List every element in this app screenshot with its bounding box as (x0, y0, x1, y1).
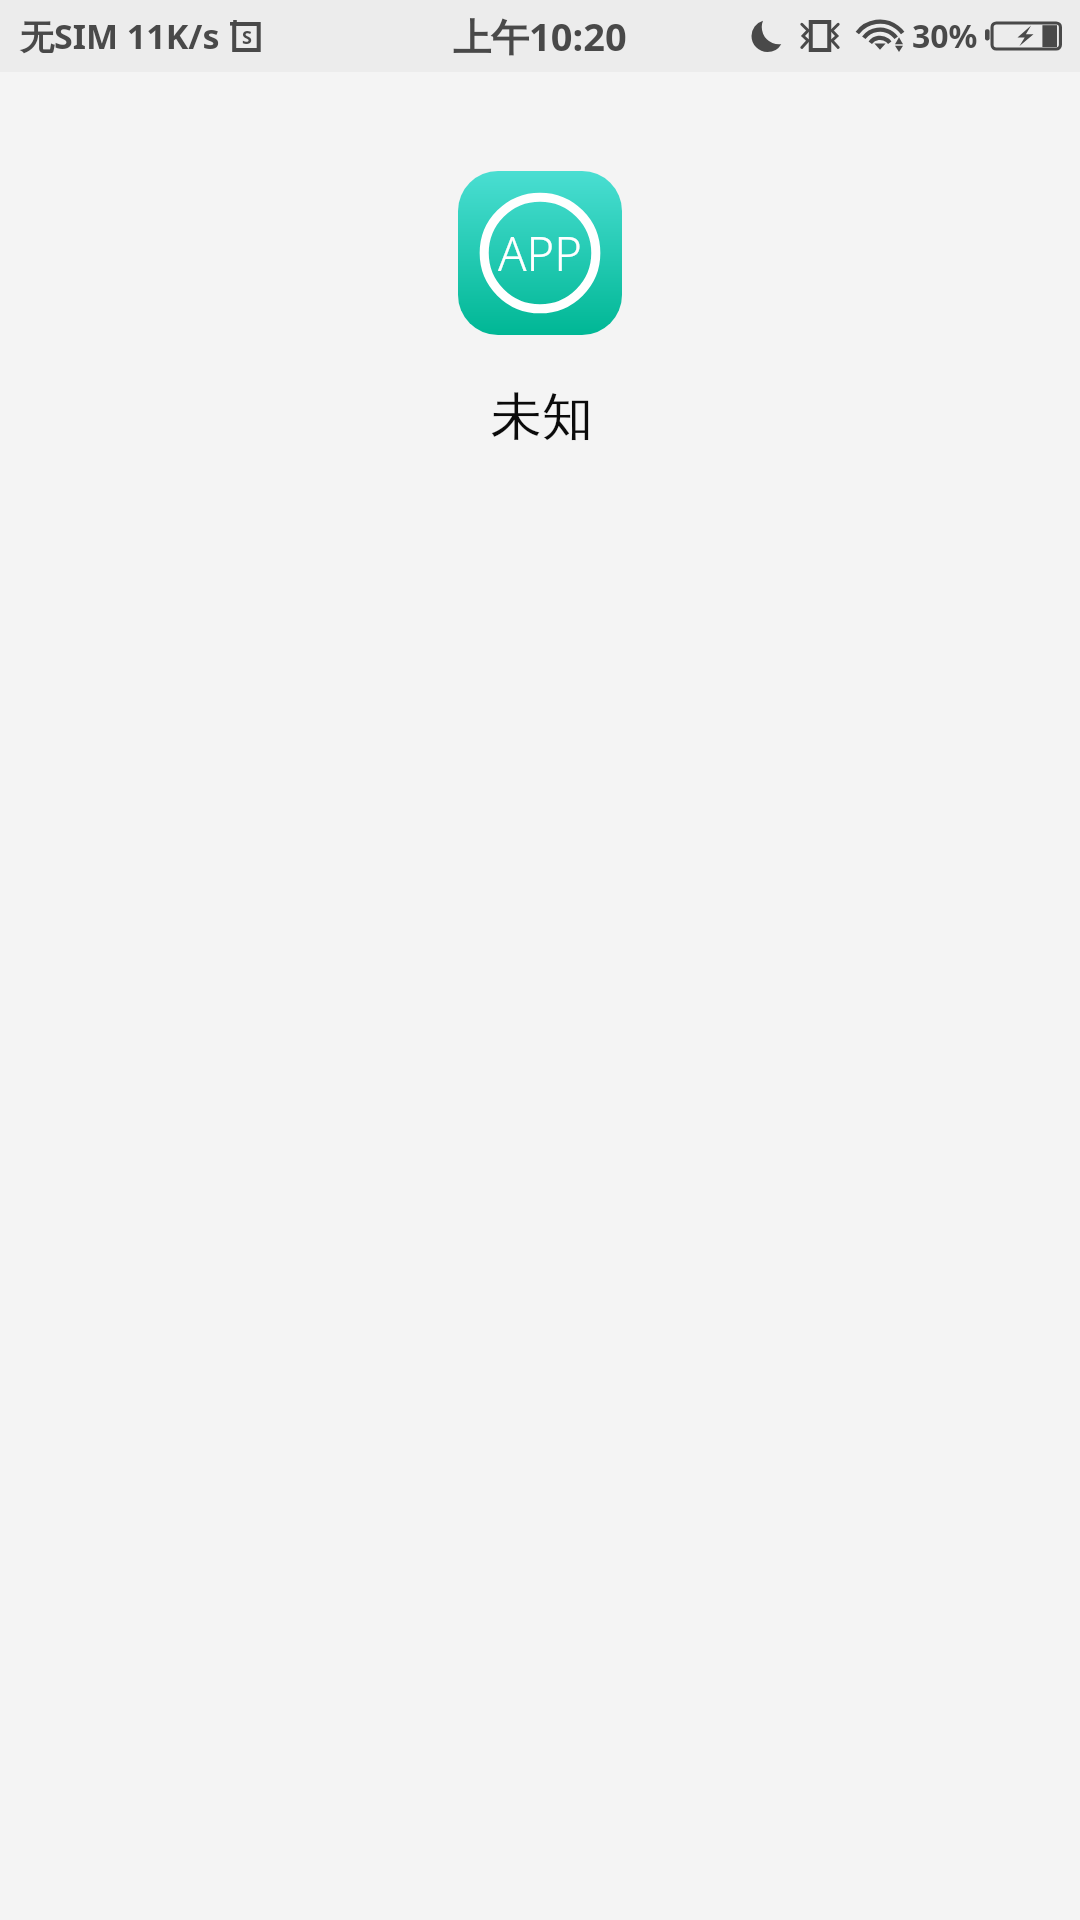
staticText: 无SIM 11K/s (20, 13, 220, 59)
staticText: 30% (912, 14, 978, 58)
staticText: APP (498, 221, 582, 285)
button[interactable]: App icon (458, 171, 622, 335)
staticText: S (242, 25, 252, 50)
other: Do not disturb (750, 20, 782, 52)
staticText: 上午10:20 (453, 10, 627, 62)
other: Vibrate (801, 20, 839, 52)
staticText: 未知 (491, 385, 593, 449)
button[interactable]: App icon (0, 171, 1080, 449)
other: Wi-Fi (857, 20, 903, 52)
other: Battery charging 30 percent (985, 21, 1062, 51)
